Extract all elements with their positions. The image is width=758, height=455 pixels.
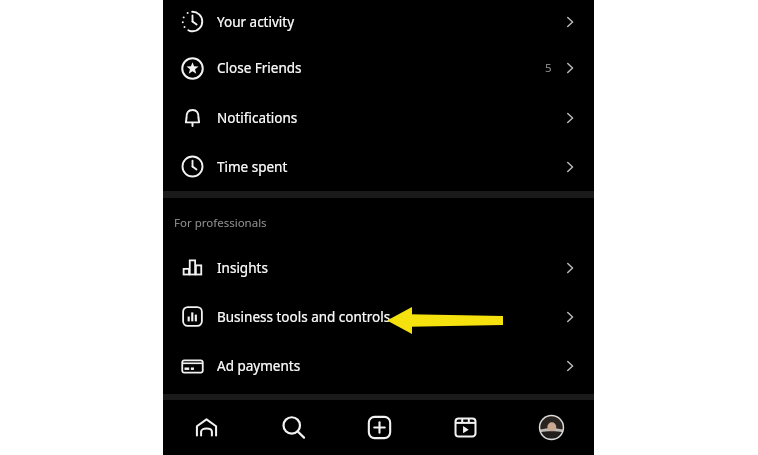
staticText: For professionals bbox=[174, 215, 267, 231]
staticText: 5 bbox=[545, 60, 552, 76]
button[interactable]: Close Friends bbox=[163, 43, 594, 93]
button[interactable]: Time spent bbox=[163, 142, 594, 191]
button[interactable]: Profile bbox=[508, 400, 594, 455]
button[interactable]: Insights bbox=[163, 243, 594, 292]
staticText: Notifications bbox=[217, 109, 298, 127]
staticText: Close Friends bbox=[217, 59, 302, 77]
button[interactable]: Ad payments bbox=[163, 341, 594, 391]
button[interactable]: Your activity bbox=[163, 0, 594, 43]
button[interactable]: Notifications bbox=[163, 93, 594, 142]
button[interactable]: Home bbox=[163, 400, 250, 455]
staticText: Insights bbox=[217, 259, 268, 277]
staticText: Your activity bbox=[217, 13, 295, 31]
button[interactable]: Create bbox=[336, 400, 422, 455]
button[interactable]: Search bbox=[250, 400, 336, 455]
staticText: Ad payments bbox=[217, 357, 301, 375]
button[interactable]: Business tools and controls bbox=[163, 292, 594, 341]
staticText: Time spent bbox=[217, 158, 288, 176]
button[interactable]: Reels bbox=[422, 400, 508, 455]
staticText: Business tools and controls bbox=[217, 308, 391, 326]
